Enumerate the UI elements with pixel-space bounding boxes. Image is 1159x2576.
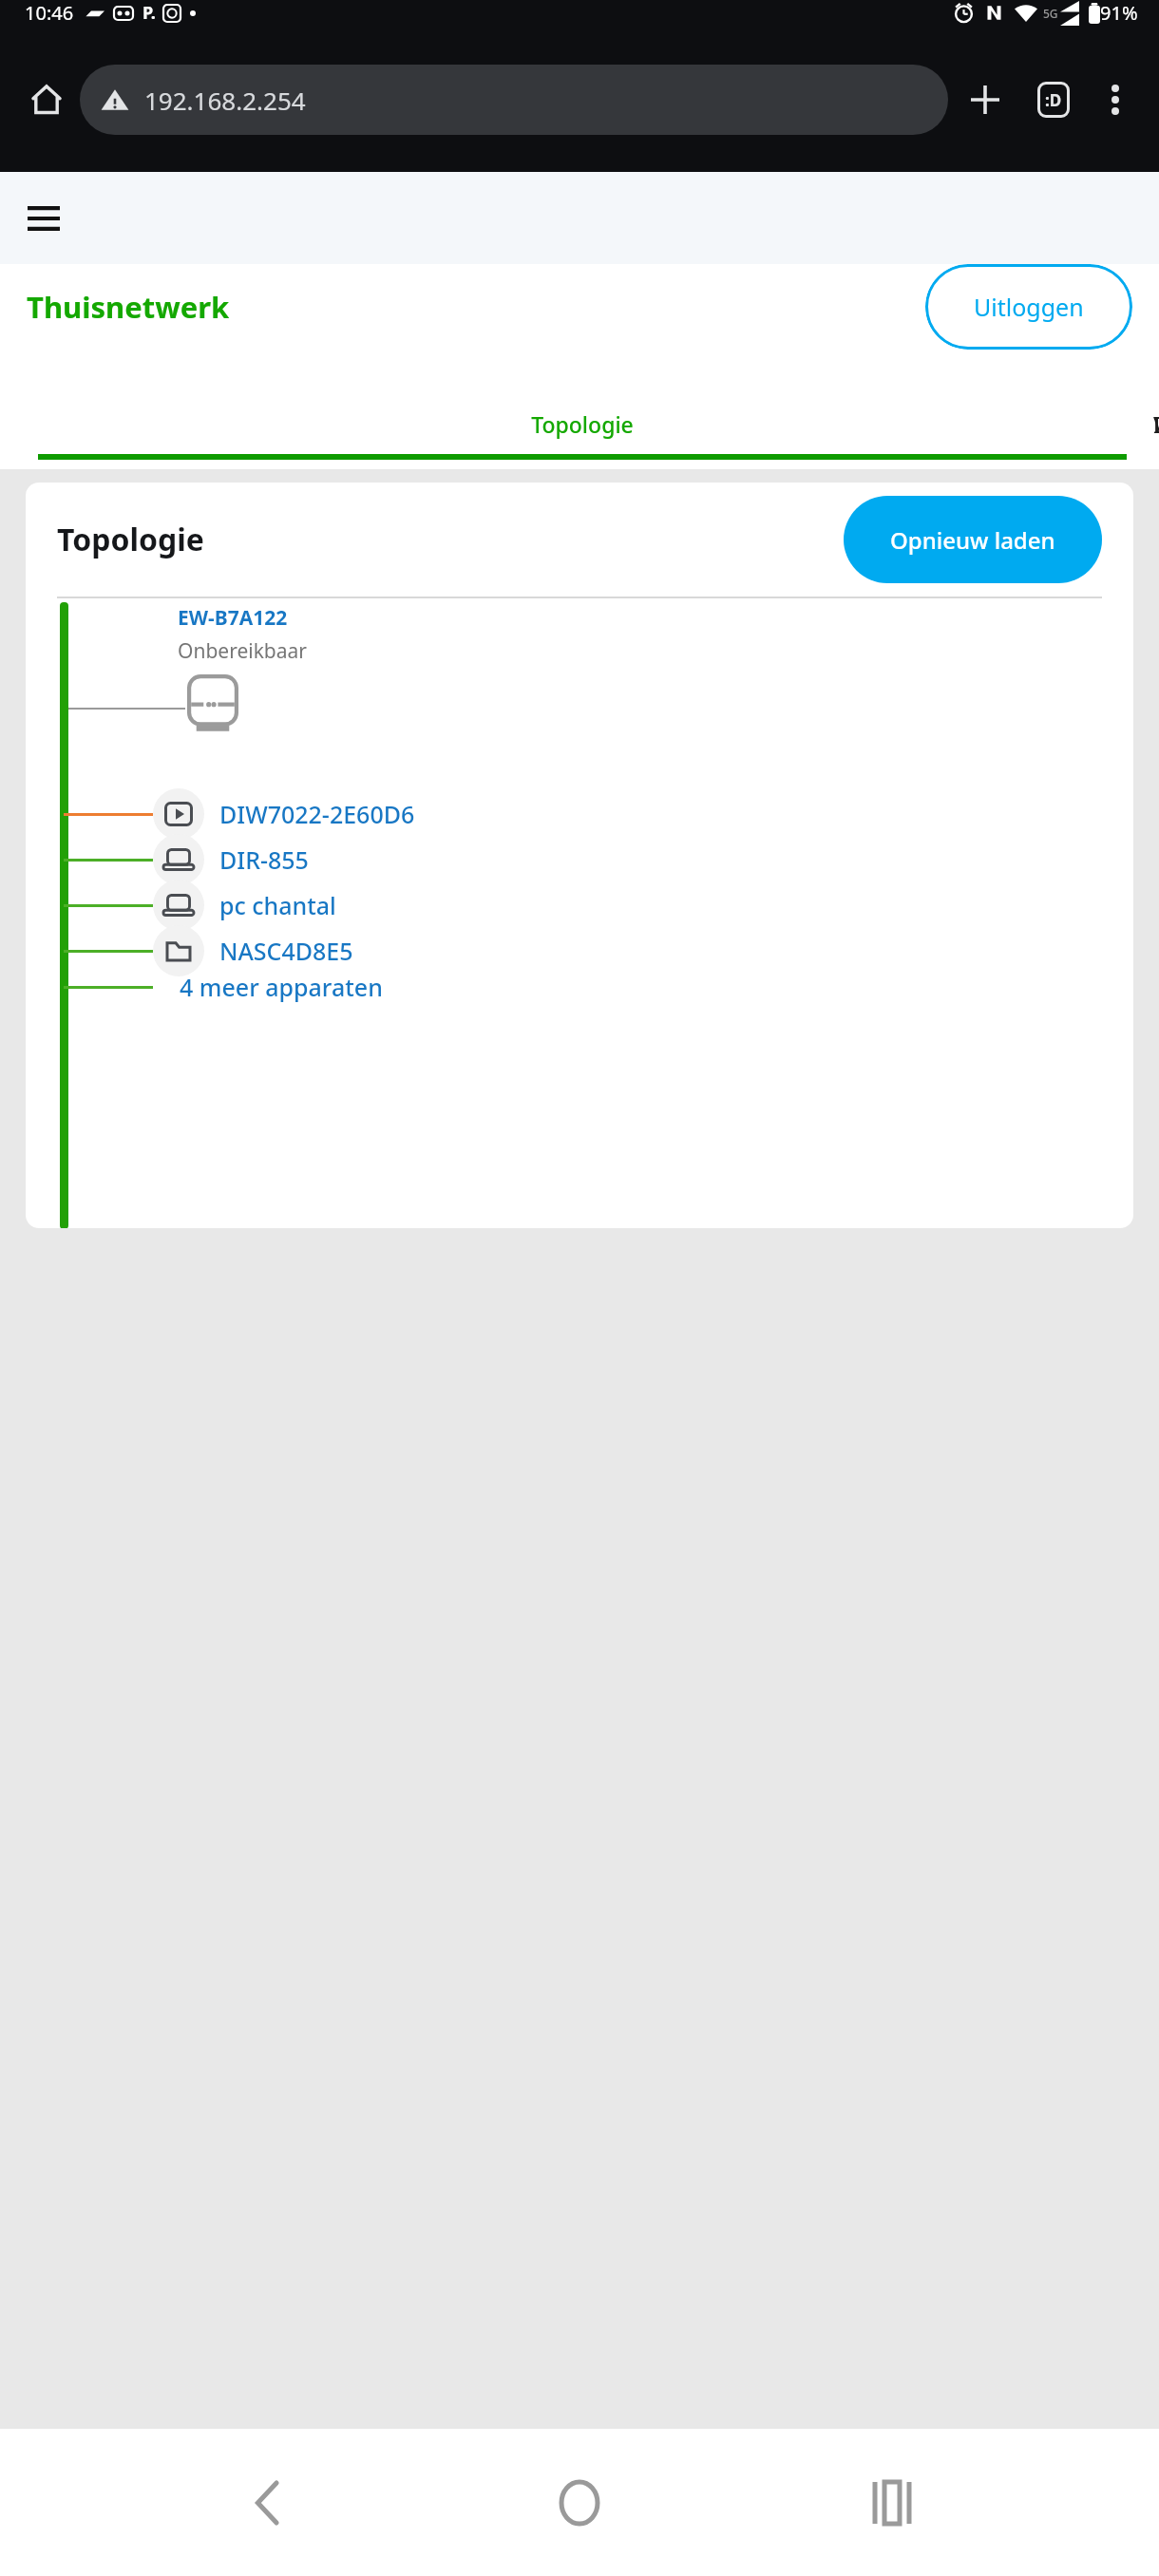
button[interactable]: NASC4D8E5: [64, 925, 1133, 976]
staticText: DIR-855: [219, 843, 309, 876]
button[interactable]: Back: [221, 2457, 313, 2548]
staticText: 192.168.2.254: [144, 84, 306, 117]
button[interactable]: DIR-855: [64, 834, 1133, 885]
staticText: Onbereikbaar: [178, 637, 308, 665]
button[interactable]: Opnieuw laden: [844, 496, 1102, 583]
button[interactable]: 4 meer apparaten: [64, 971, 1133, 1003]
staticText: Uitloggen: [974, 291, 1084, 323]
button[interactable]: Home: [534, 2457, 625, 2548]
button[interactable]: Recent apps: [846, 2457, 938, 2548]
staticText: 5G: [1043, 6, 1058, 21]
staticText: Thuisnetwerk: [27, 287, 230, 327]
button[interactable]: Home: [17, 70, 76, 129]
button[interactable]: DIW7022-2E60D6: [64, 788, 1133, 840]
button[interactable]: EW-B7A122: [178, 604, 288, 632]
button[interactable]: Topologie: [25, 390, 1140, 460]
staticText: pc chantal: [219, 889, 336, 921]
button[interactable]: Uitloggen: [925, 264, 1132, 350]
staticText: 10:46: [25, 0, 74, 26]
button[interactable]: Menu: [9, 184, 78, 253]
button[interactable]: More options: [1089, 73, 1142, 126]
staticText: Topologie: [531, 409, 634, 439]
staticText: :D: [1045, 89, 1062, 111]
staticText: P.: [142, 1, 156, 25]
staticText: 4 meer apparaten: [180, 971, 383, 1003]
staticText: 91%: [1100, 0, 1138, 26]
button[interactable]: Tabs: [1024, 70, 1083, 129]
button[interactable]: pc chantal: [64, 880, 1133, 931]
staticText: DIW7022-2E60D6: [219, 798, 415, 830]
staticText: Topologie: [57, 519, 204, 560]
staticText: Opnieuw laden: [890, 524, 1055, 556]
staticText: NASC4D8E5: [219, 935, 353, 967]
button[interactable]: New tab: [956, 70, 1015, 129]
button[interactable]: 192.168.2.254: [80, 65, 948, 135]
